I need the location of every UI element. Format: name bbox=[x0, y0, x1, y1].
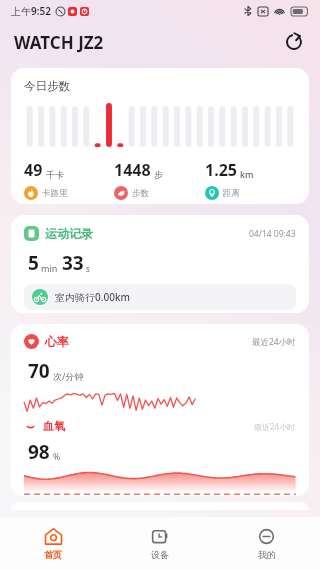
staticText: 33 bbox=[62, 250, 84, 276]
staticText: 1.25 bbox=[205, 159, 237, 181]
staticText: 98 bbox=[28, 439, 50, 465]
staticText: 步 bbox=[154, 169, 163, 180]
staticText: 室内骑行0.00km bbox=[55, 290, 130, 304]
staticText: 上午9:52 bbox=[11, 4, 51, 18]
staticText: 04/14 09:43 bbox=[249, 228, 296, 240]
button[interactable]: 心率 bbox=[11, 324, 309, 496]
button[interactable]: 首页 bbox=[0, 527, 106, 560]
staticText: s bbox=[86, 263, 90, 274]
staticText: 最近24小时 bbox=[254, 421, 296, 432]
staticText: 卡路里 bbox=[42, 188, 68, 199]
button[interactable]: Refresh bbox=[280, 28, 308, 56]
staticText: 最近24小时 bbox=[252, 336, 296, 348]
staticText: km bbox=[240, 168, 254, 180]
staticText: 距离 bbox=[223, 188, 240, 199]
staticText: 步数 bbox=[132, 188, 149, 199]
staticText: min bbox=[41, 262, 58, 274]
button[interactable]: 设备 bbox=[106, 527, 213, 560]
staticText: % bbox=[53, 451, 61, 463]
staticText: WATCH JZ2 bbox=[14, 31, 104, 54]
staticText: 心率 bbox=[45, 334, 69, 349]
staticText: 1448 bbox=[114, 159, 151, 181]
staticText: 49 bbox=[24, 159, 43, 181]
staticText: 运动记录 bbox=[45, 226, 93, 241]
staticText: 次/分钟 bbox=[53, 370, 84, 382]
staticText: 我的 bbox=[258, 549, 276, 560]
button[interactable]: 运动记录 bbox=[11, 215, 309, 313]
staticText: 70 bbox=[28, 358, 50, 384]
button[interactable]: 今日步数 bbox=[11, 68, 309, 204]
button[interactable]: 室内骑行0.00km bbox=[24, 284, 296, 310]
staticText: 血氧 bbox=[43, 419, 65, 433]
staticText: 首页 bbox=[44, 549, 62, 560]
staticText: 5 bbox=[28, 250, 39, 276]
staticText: 今日步数 bbox=[24, 79, 70, 93]
staticText: 千卡 bbox=[46, 169, 64, 180]
staticText: 设备 bbox=[151, 549, 169, 560]
button[interactable]: 我的 bbox=[213, 527, 320, 560]
